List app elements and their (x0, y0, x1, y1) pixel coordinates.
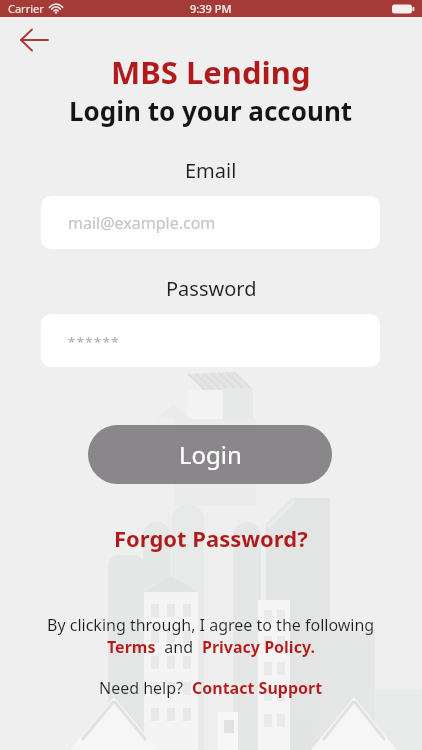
staticText: Terms (107, 636, 156, 658)
staticText: Password (166, 275, 257, 302)
button[interactable]: Privacy Policy. (202, 636, 315, 658)
staticText: Login (179, 438, 242, 471)
staticText: and (156, 636, 202, 658)
button[interactable]: Terms (107, 636, 156, 658)
staticText: MBS Lending (111, 51, 311, 93)
button[interactable] (8, 24, 56, 58)
button[interactable]: Forgot Password? (114, 521, 308, 555)
staticText: By clicking through, I agree to the foll… (47, 614, 375, 636)
staticText: Carrier (8, 1, 44, 16)
staticText: Need help? (99, 677, 192, 699)
staticText: Email (185, 157, 237, 184)
staticText: ****** (68, 333, 120, 351)
staticText: Forgot Password? (114, 523, 308, 553)
staticText: Contact Support (192, 677, 323, 699)
staticText: mail@example.com (68, 212, 216, 234)
button[interactable]: ****** (41, 314, 380, 367)
button[interactable]: Contact Support (192, 677, 323, 699)
staticText: Privacy Policy. (202, 636, 315, 658)
button[interactable]: Login (88, 425, 332, 484)
staticText: Login to your account (69, 93, 353, 128)
staticText: 9:39 PM (190, 1, 232, 16)
button[interactable]: mail@example.com (41, 196, 380, 249)
